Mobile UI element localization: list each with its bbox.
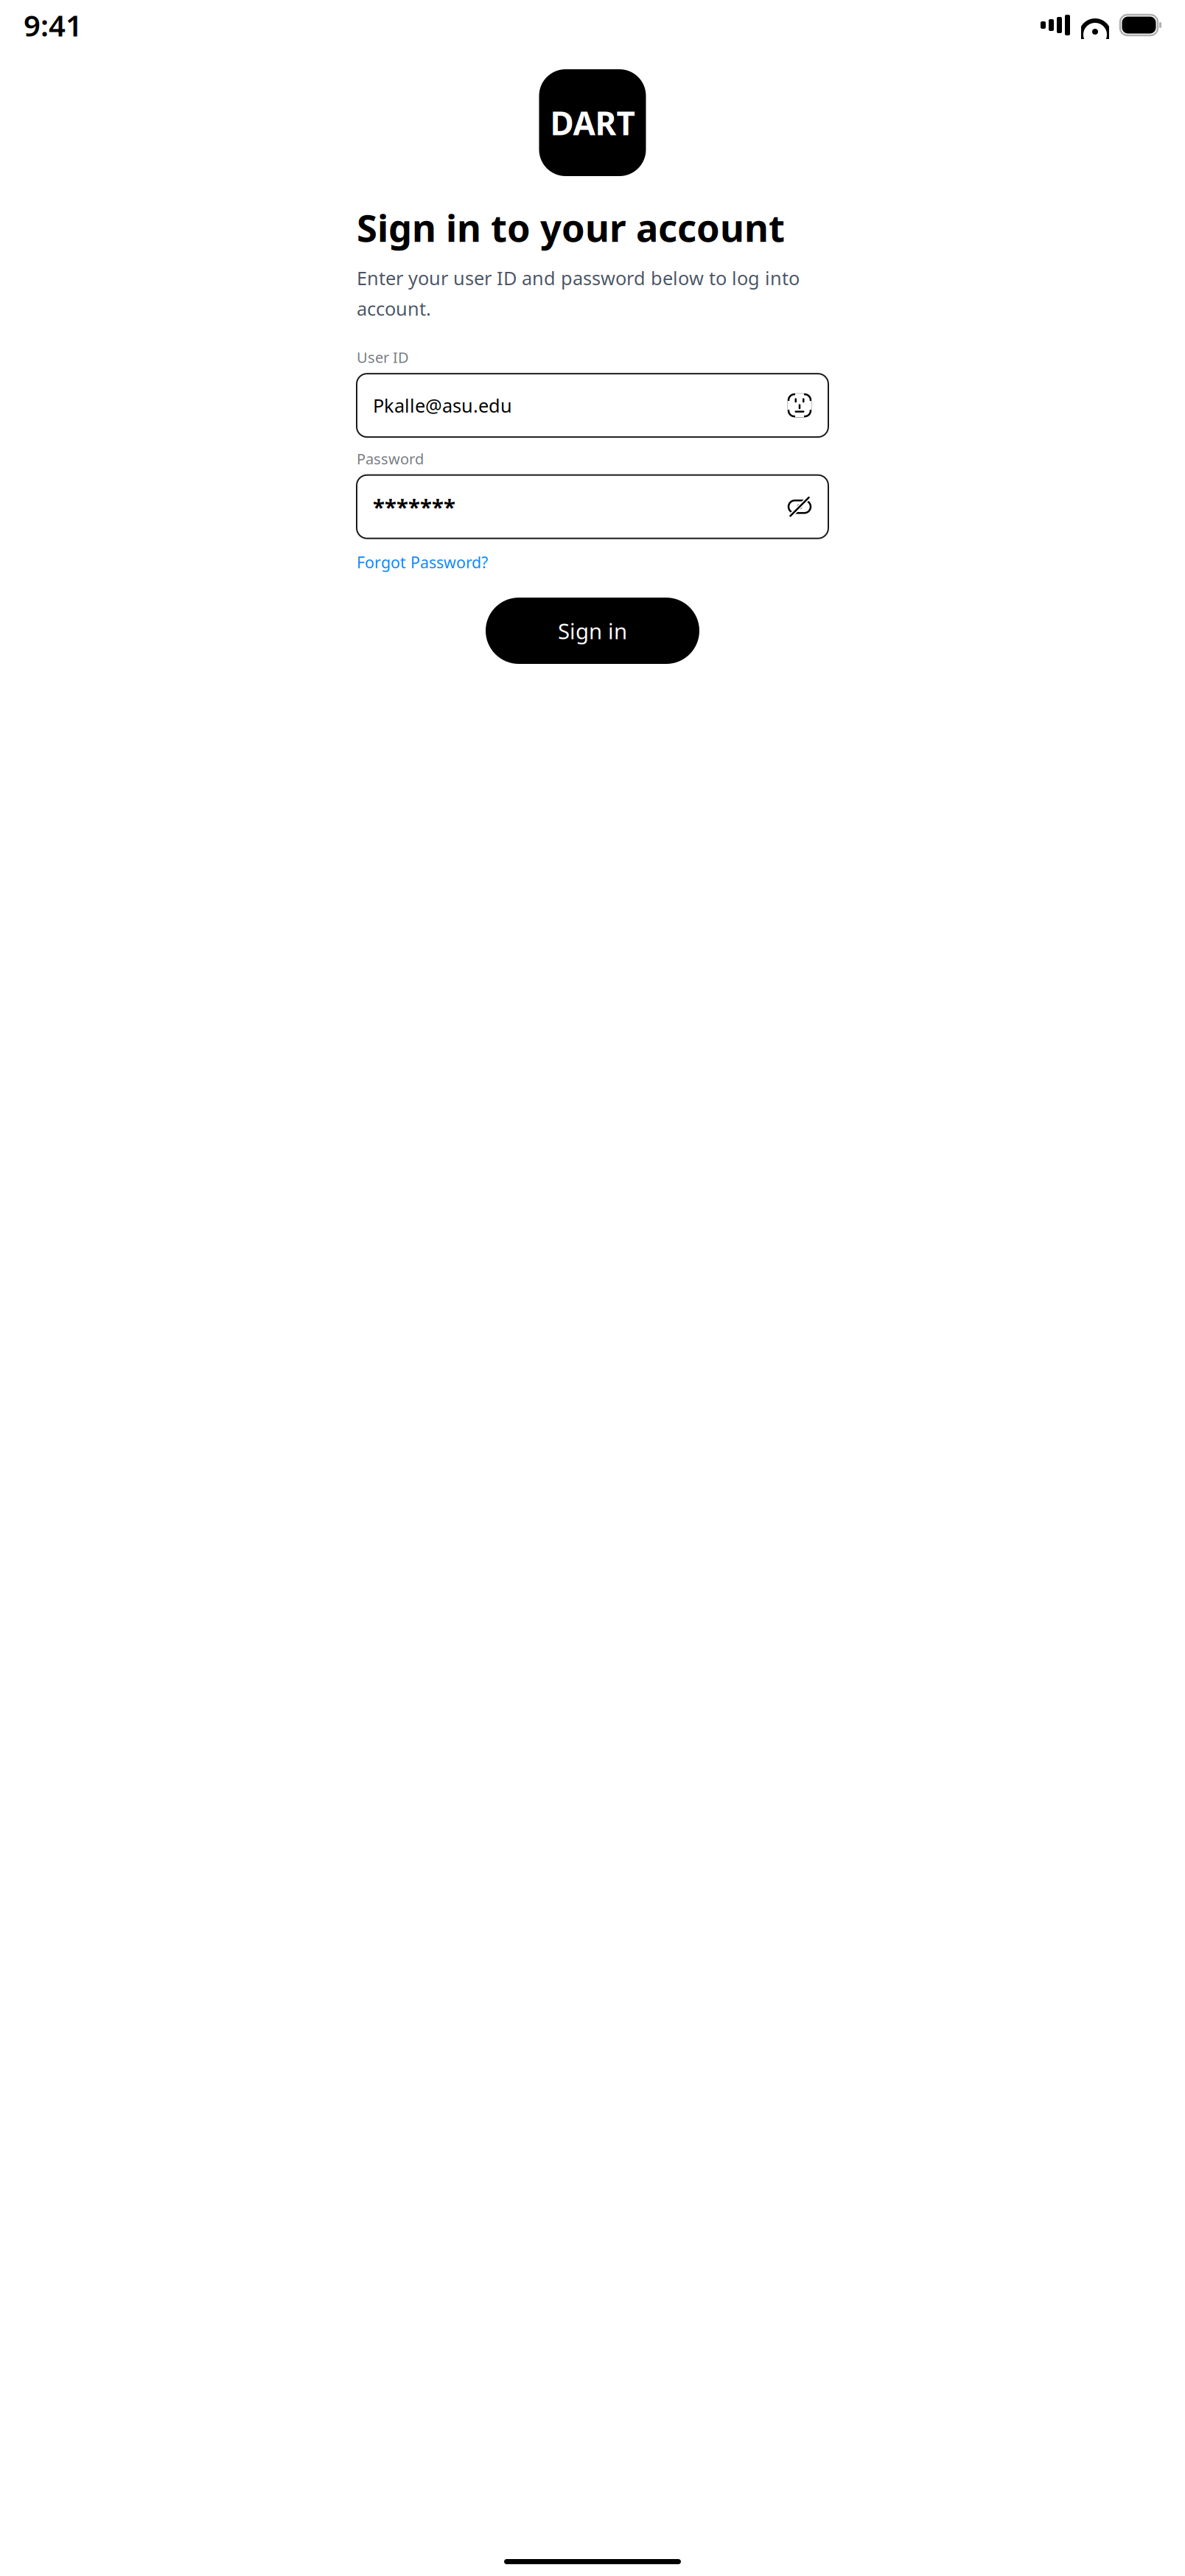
staticText: Pkalle@asu.edu — [373, 393, 512, 418]
staticText: Forgot Password? — [357, 552, 488, 573]
staticText: ******* — [373, 492, 455, 521]
staticText: 9:41 — [24, 5, 83, 45]
staticText: DART — [550, 101, 635, 144]
staticText: Sign in to your account — [357, 203, 785, 252]
staticText: Enter your user ID and password below to… — [357, 265, 800, 290]
button[interactable]: Sign in — [486, 598, 699, 664]
button[interactable]: Forgot Password? — [357, 549, 488, 575]
button[interactable]: Scan Face ID — [787, 393, 812, 418]
staticText: account. — [357, 296, 431, 321]
staticText: User ID — [357, 347, 409, 367]
staticText: Sign in — [558, 616, 627, 645]
staticText: Password — [357, 449, 424, 468]
button[interactable]: Show password — [787, 494, 812, 519]
